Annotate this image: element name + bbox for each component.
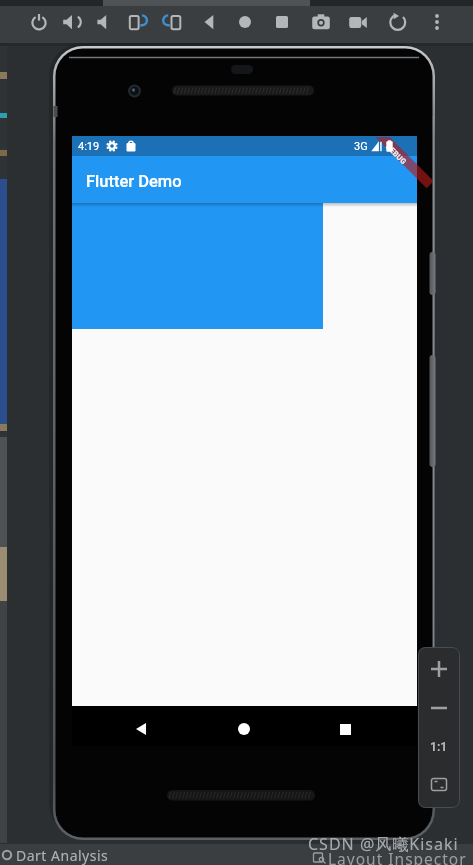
button[interactable]: [233, 718, 255, 740]
staticText: DEBUG: [384, 142, 408, 166]
button[interactable]: [72, 203, 323, 329]
button[interactable]: [130, 718, 152, 740]
button[interactable]: [159, 9, 185, 35]
button[interactable]: [197, 9, 223, 35]
button[interactable]: [2, 849, 14, 861]
button[interactable]: [91, 9, 117, 35]
button[interactable]: [422, 692, 456, 724]
button[interactable]: [232, 9, 258, 35]
button[interactable]: Layout Inspector: [328, 848, 467, 865]
staticText: Flutter Demo: [86, 172, 182, 191]
button[interactable]: [422, 653, 456, 685]
button[interactable]: [308, 9, 334, 35]
button[interactable]: [125, 9, 151, 35]
staticText: CSDN @风曦Kisaki: [308, 833, 459, 855]
button[interactable]: Dart Analysis: [16, 846, 109, 865]
button[interactable]: [385, 9, 411, 35]
button[interactable]: 1:1: [422, 731, 456, 763]
button[interactable]: [422, 768, 456, 800]
button[interactable]: [59, 9, 85, 35]
button[interactable]: [424, 9, 450, 35]
button[interactable]: [269, 9, 295, 35]
staticText: 3G: [354, 140, 368, 153]
staticText: 1:1: [430, 740, 448, 754]
button[interactable]: [334, 718, 356, 740]
button[interactable]: [26, 9, 52, 35]
button[interactable]: [345, 9, 371, 35]
staticText: 4:19: [78, 140, 100, 153]
